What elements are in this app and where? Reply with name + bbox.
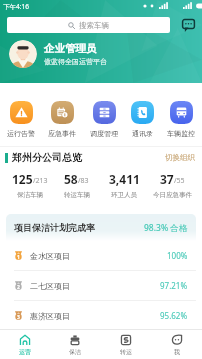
- staticText: 3,411: [109, 171, 140, 187]
- button[interactable]: 1: [6, 241, 196, 270]
- button[interactable]: 运行告警: [7, 101, 35, 138]
- button[interactable]: 58: [53, 171, 100, 199]
- staticText: 37: [160, 171, 174, 187]
- staticText: 搜索车辆: [79, 21, 109, 30]
- staticText: 100%: [167, 250, 188, 261]
- button[interactable]: 2: [6, 271, 196, 300]
- button[interactable]: 切换组织: [165, 153, 195, 162]
- staticText: 转运车辆: [64, 191, 90, 199]
- staticText: 95.62%: [160, 310, 188, 321]
- button[interactable]: 3,411: [100, 171, 148, 199]
- staticText: 今日应急事件: [153, 191, 192, 199]
- staticText: /213: [33, 176, 48, 186]
- button[interactable]: 保洁: [50, 330, 100, 359]
- button[interactable]: 应急事件: [48, 101, 76, 138]
- staticText: 项目保洁计划完成率: [14, 222, 95, 233]
- button[interactable]: 125: [6, 171, 53, 199]
- staticText: /83: [78, 176, 89, 186]
- button[interactable]: Messages: [181, 18, 195, 32]
- staticText: 运行告警: [7, 129, 35, 138]
- staticText: 郑州分公司总览: [12, 151, 82, 164]
- staticText: 125: [12, 171, 33, 187]
- staticText: 金水区项目: [30, 251, 70, 261]
- button[interactable]: 转运: [100, 330, 151, 359]
- staticText: 58: [64, 171, 78, 187]
- staticText: 车辆监控: [167, 129, 195, 138]
- button[interactable]: 3: [6, 301, 196, 330]
- staticText: 傲蓝得全国运营平台: [44, 57, 107, 66]
- staticText: 保洁: [69, 348, 81, 356]
- staticText: 运营: [19, 348, 31, 356]
- staticText: 我: [174, 348, 180, 356]
- staticText: 97.21%: [160, 280, 188, 291]
- staticText: 1: [17, 254, 20, 261]
- button[interactable]: 搜索车辆: [7, 17, 170, 33]
- button[interactable]: 37: [148, 171, 196, 199]
- staticText: 通讯录: [132, 129, 153, 138]
- staticText: 98.3% 合格: [144, 222, 188, 234]
- button[interactable]: 运营: [0, 330, 50, 359]
- staticText: 调度管理: [90, 129, 118, 138]
- staticText: 应急事件: [48, 129, 76, 138]
- staticText: 下午4:16: [3, 2, 29, 11]
- staticText: 环卫人员: [111, 191, 137, 199]
- button[interactable]: 车辆监控: [167, 101, 195, 138]
- button[interactable]: 调度管理: [90, 101, 118, 138]
- staticText: 2: [17, 284, 20, 291]
- staticText: 惠济区项目: [30, 311, 70, 321]
- staticText: /55: [174, 176, 185, 186]
- button[interactable]: 我: [151, 330, 202, 359]
- staticText: 二七区项目: [30, 281, 70, 291]
- staticText: 转运: [120, 348, 132, 356]
- staticText: 企业管理员: [44, 42, 97, 55]
- staticText: 切换组织: [165, 153, 195, 162]
- staticText: 保洁车辆: [17, 191, 43, 199]
- staticText: 3: [17, 314, 20, 321]
- button[interactable]: 通讯录: [131, 101, 154, 138]
